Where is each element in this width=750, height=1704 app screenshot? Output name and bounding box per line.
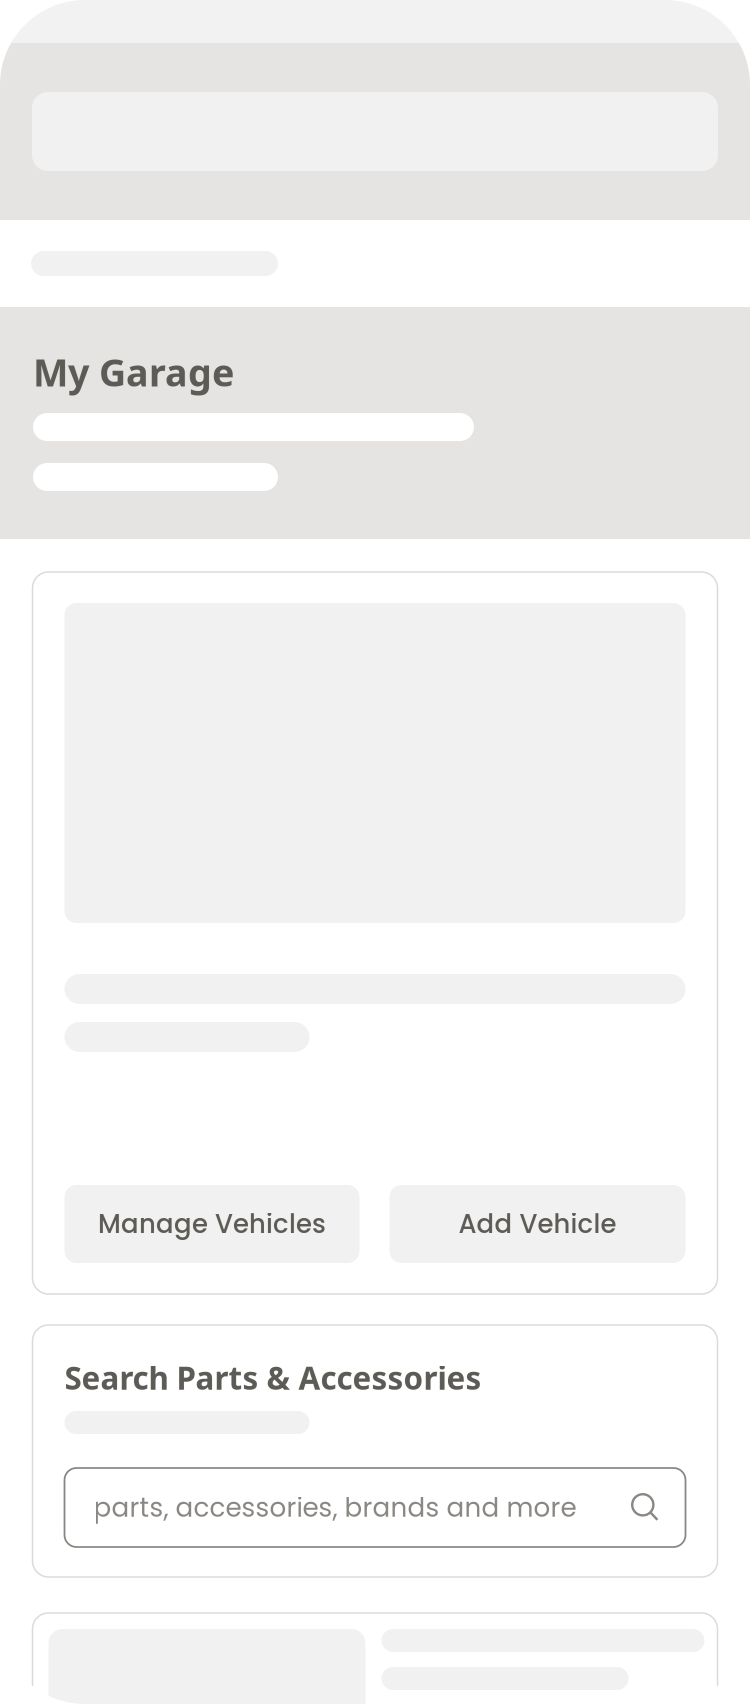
staticText: Add Vehicle: [458, 1206, 616, 1242]
staticText: parts, accessories, brands and more: [93, 1489, 576, 1526]
staticText: My Garage: [33, 346, 234, 398]
button[interactable]: Add Vehicle: [389, 1185, 685, 1263]
button[interactable]: Manage Vehicles: [64, 1185, 359, 1263]
staticText: Manage Vehicles: [98, 1206, 326, 1242]
staticText: Search Parts & Accessories: [64, 1356, 481, 1399]
button[interactable]: parts, accessories, brands and more: [64, 1468, 685, 1547]
